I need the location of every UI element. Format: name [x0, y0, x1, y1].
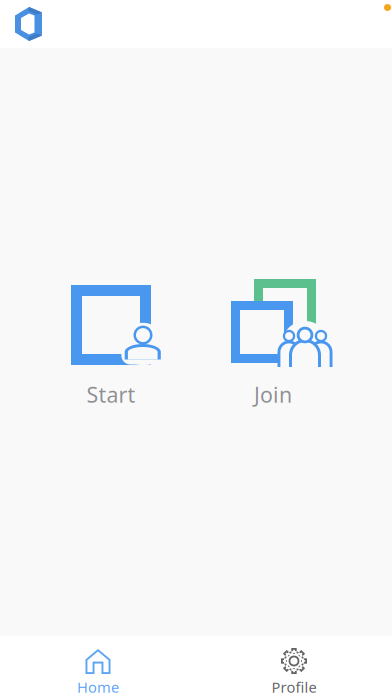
button[interactable]: Home: [0, 636, 196, 696]
staticText: Join: [254, 380, 292, 409]
button[interactable]: [231, 279, 355, 375]
button[interactable]: [71, 285, 195, 381]
staticText: Start: [86, 380, 135, 409]
button[interactable]: Profile: [196, 636, 392, 696]
staticText: Home: [77, 677, 119, 696]
staticText: Profile: [271, 677, 316, 696]
